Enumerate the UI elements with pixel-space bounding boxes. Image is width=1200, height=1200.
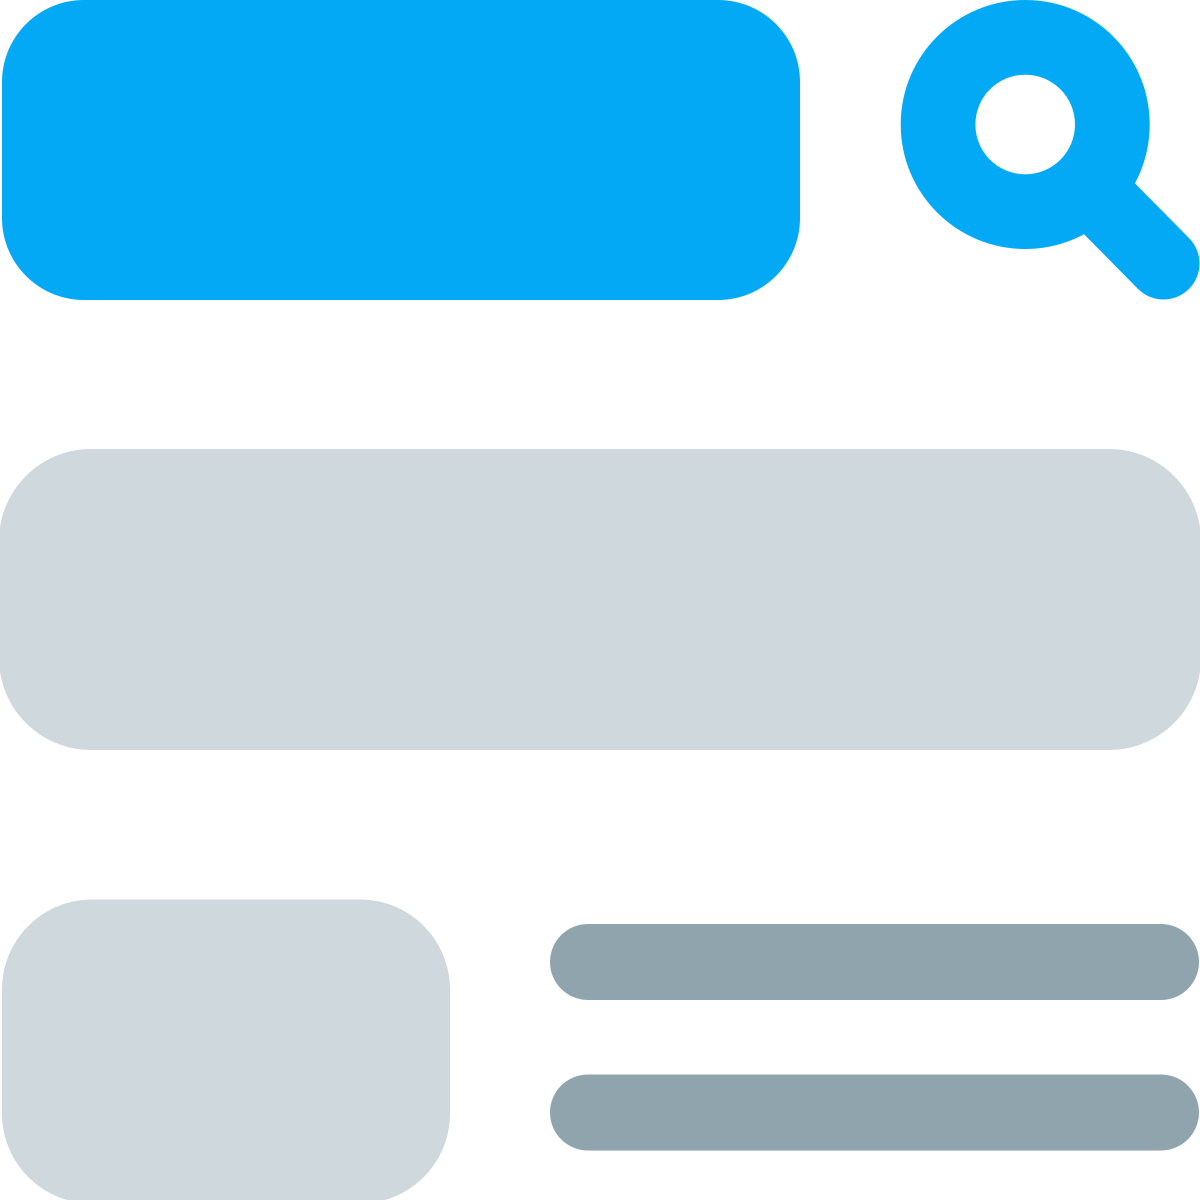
button[interactable]: Search <box>900 0 1200 300</box>
